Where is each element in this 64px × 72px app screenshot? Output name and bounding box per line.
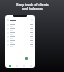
button[interactable] xyxy=(5,23,35,27)
button[interactable]: Tab xyxy=(28,63,33,68)
button[interactable] xyxy=(5,35,35,39)
button[interactable] xyxy=(5,43,35,47)
button[interactable]: Tab xyxy=(21,63,26,68)
button[interactable] xyxy=(5,31,35,35)
button[interactable] xyxy=(5,27,35,31)
button[interactable]: Tab xyxy=(14,63,19,68)
button[interactable]: Tab xyxy=(7,63,12,68)
button[interactable]: Add client xyxy=(25,57,28,60)
staticText: Keep track of clients and balances xyxy=(16,3,49,11)
button[interactable] xyxy=(5,39,35,43)
